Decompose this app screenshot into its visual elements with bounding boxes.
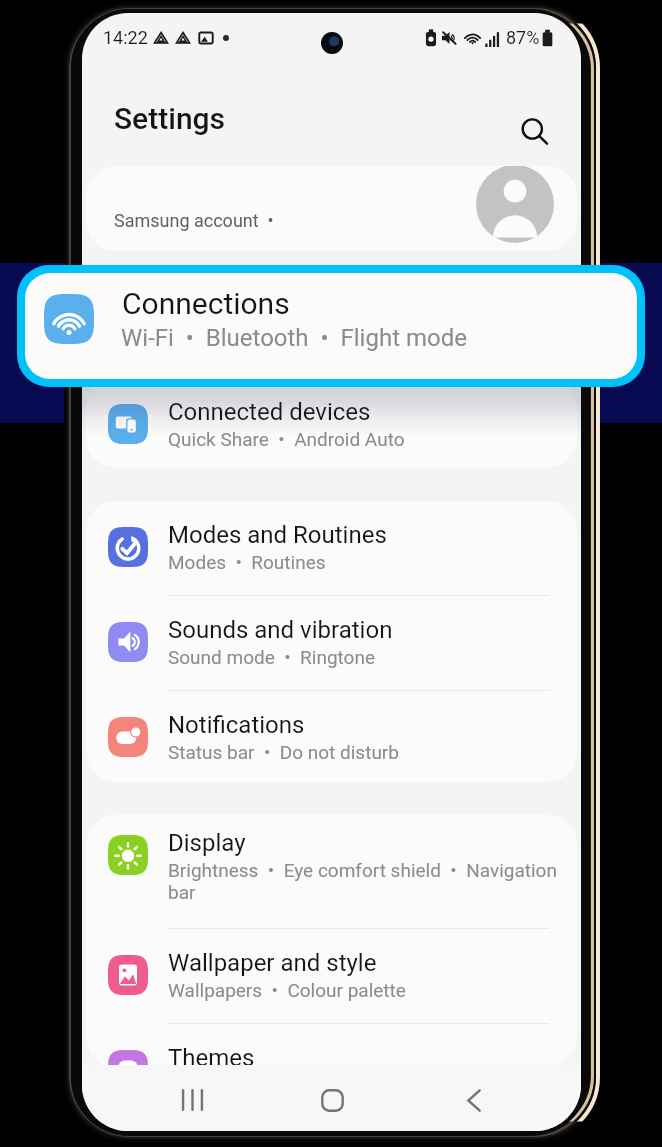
staticText: Sounds and vibration [168,616,393,644]
staticText: Connections [122,286,290,321]
staticText: 14:22 [103,27,148,48]
staticText: Display [168,829,246,857]
staticText: Wi-Fi • Bluetooth • Flight mode [121,324,467,352]
button[interactable]: Display [86,815,577,929]
button[interactable]: Search [512,109,558,155]
button[interactable]: Modes and Routines [86,501,577,596]
staticText: Settings [114,101,226,136]
button[interactable]: Connected devices [86,378,577,468]
staticText: Brightness • Eye comfort shield • Naviga… [168,859,558,903]
staticText: Wallpapers • Colour palette [168,979,558,1001]
button[interactable]: Sounds and vibration [86,596,577,691]
staticText: Themes [168,1044,255,1067]
staticText: Quick Share • Android Auto [168,428,558,450]
staticText: Samsung account • [114,210,274,231]
button[interactable]: Connections [25,273,637,379]
button[interactable]: Themes [86,1024,577,1067]
button[interactable]: Samsung account • [86,166,577,251]
staticText: Wallpaper and style [168,949,377,977]
button[interactable]: Home [304,1080,361,1120]
button[interactable]: Notifications [86,691,577,782]
button[interactable]: Back [445,1080,502,1120]
staticText: Modes and Routines [168,521,387,549]
staticText: Status bar • Do not disturb [168,741,558,763]
button[interactable]: Wallpaper and style [86,929,577,1024]
staticText: Connected devices [168,398,371,426]
staticText: Notifications [168,711,305,739]
staticText: Sound mode • Ringtone [168,646,558,668]
button[interactable]: Recents [164,1080,221,1120]
staticText: Modes • Routines [168,551,558,573]
staticText: 87% [506,27,540,48]
